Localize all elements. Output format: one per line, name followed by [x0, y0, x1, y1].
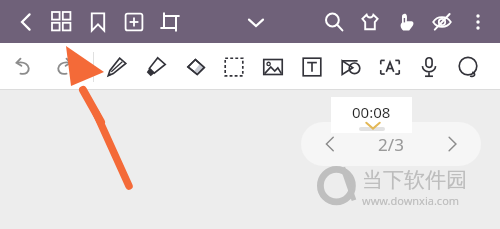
button[interactable]: 00:08 [331, 97, 412, 133]
button[interactable]: Back [8, 0, 44, 43]
button[interactable]: More options [460, 0, 496, 43]
button[interactable]: Next page [437, 129, 467, 159]
button[interactable]: Insert image [253, 43, 292, 90]
staticText: 00:08 [352, 102, 391, 122]
button[interactable]: Template [352, 0, 388, 43]
button[interactable]: Shapes [331, 43, 370, 90]
button[interactable]: Lasso [448, 43, 487, 90]
button[interactable]: Recognize text [370, 43, 409, 90]
button[interactable]: Text box [292, 43, 331, 90]
button[interactable]: Bookmark [80, 0, 116, 43]
button[interactable]: Previous page [315, 129, 345, 159]
staticText: www.downxia.com [362, 193, 460, 208]
button[interactable]: Eraser [175, 43, 214, 90]
button[interactable]: Expand [242, 8, 270, 36]
button[interactable]: Pages grid [44, 0, 80, 43]
button[interactable]: Redo [43, 43, 82, 90]
button[interactable]: Add page [116, 0, 152, 43]
button[interactable]: Search [316, 0, 352, 43]
button[interactable]: Crop [152, 0, 188, 43]
staticText: 当下软件园 [362, 167, 467, 193]
button[interactable]: Pen [97, 43, 136, 90]
button[interactable]: Touch mode [388, 0, 424, 43]
button[interactable]: Select [214, 43, 253, 90]
button[interactable]: Highlighter [136, 43, 175, 90]
button[interactable]: Voice note [409, 43, 448, 90]
button[interactable]: Undo [4, 43, 43, 90]
button[interactable]: Hide layer [424, 0, 460, 43]
staticText: 2/3 [378, 133, 404, 156]
